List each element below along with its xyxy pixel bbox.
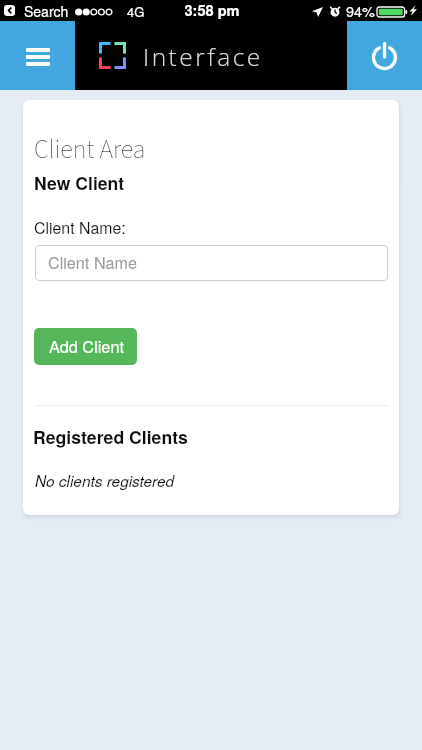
button[interactable]: Client Name — [35, 245, 388, 281]
staticText: Registered Clients — [33, 424, 188, 449]
staticText: 94% — [346, 0, 376, 21]
button[interactable]: Add Client — [34, 328, 137, 365]
staticText: Client Name — [48, 250, 137, 273]
staticText: 3:58 pm — [1, 0, 422, 21]
button[interactable]: Power, log out — [347, 21, 422, 90]
button[interactable]: Open navigation menu — [0, 21, 75, 90]
staticText: Interface — [143, 40, 263, 73]
staticText: Client Name: — [34, 216, 126, 239]
staticText: 4G — [127, 2, 145, 21]
staticText: Client Area — [34, 131, 146, 168]
staticText: Add Client — [49, 334, 125, 357]
staticText: No clients registered — [35, 470, 175, 492]
staticText: Search — [24, 1, 69, 21]
staticText: New Client — [34, 170, 125, 195]
